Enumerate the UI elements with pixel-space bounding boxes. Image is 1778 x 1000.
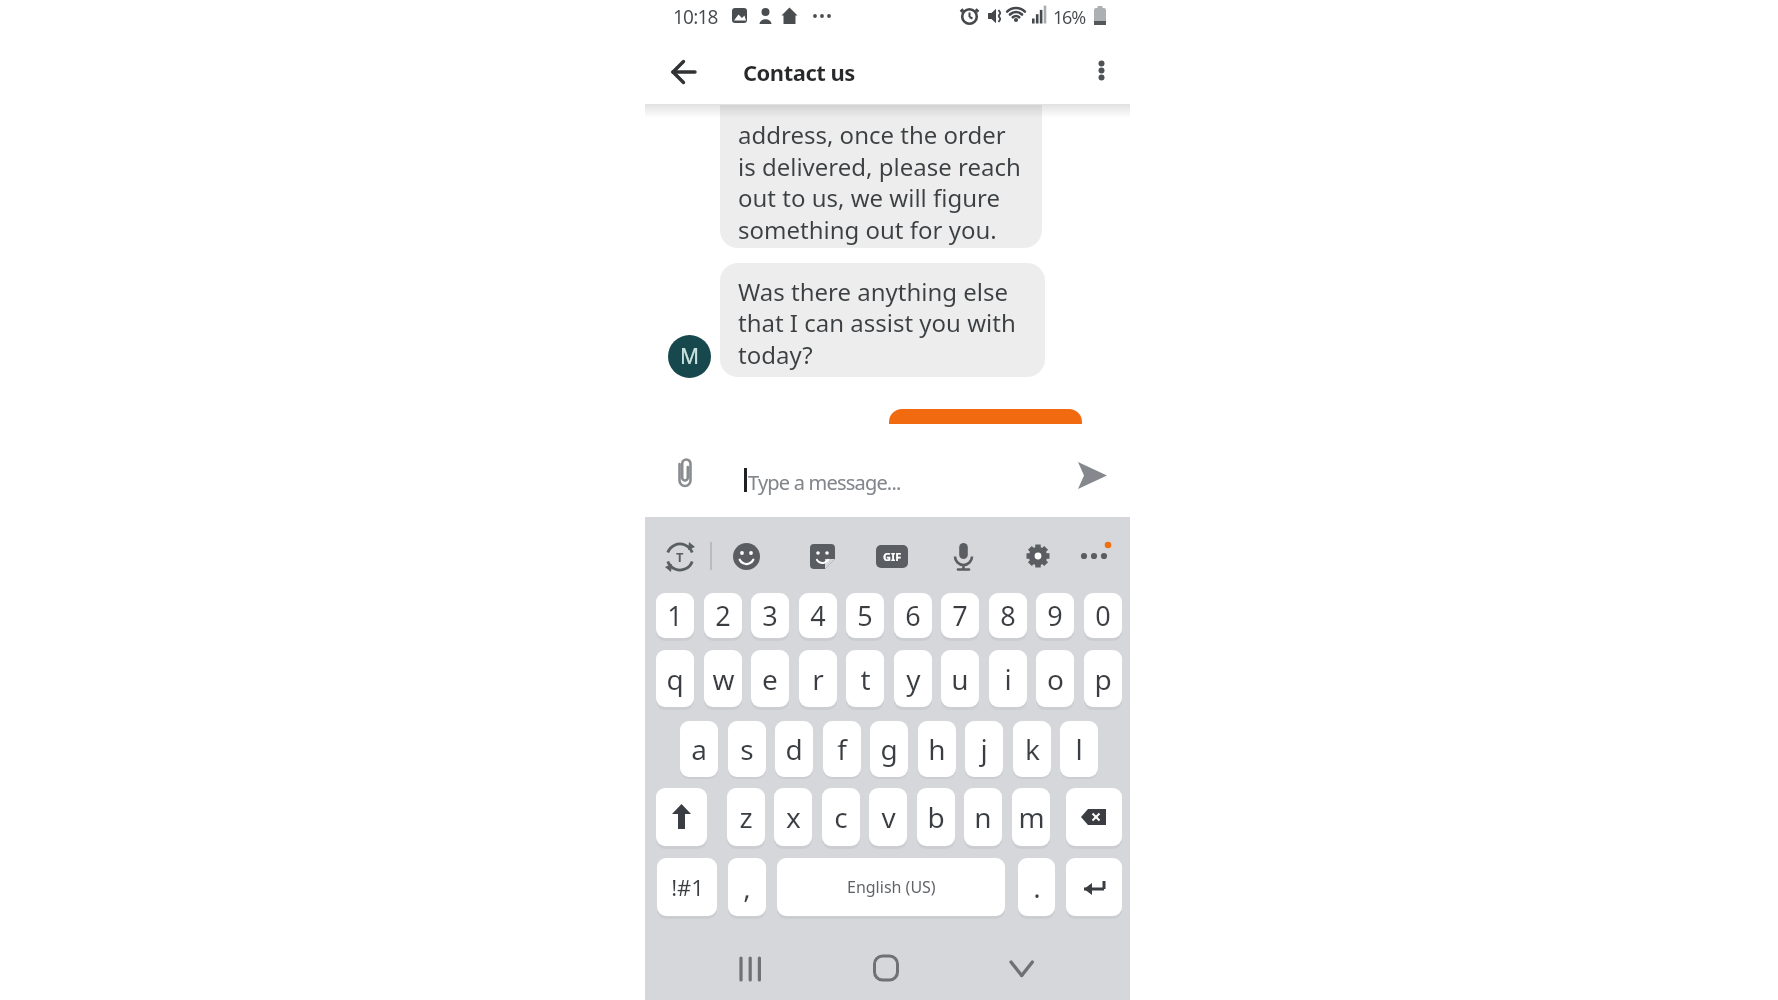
button[interactable]: 5 <box>846 593 884 638</box>
button[interactable]: 9 <box>1036 593 1074 638</box>
button[interactable]: l <box>1060 721 1098 777</box>
staticText: u <box>951 660 969 698</box>
button[interactable]: a <box>680 721 718 777</box>
staticText: g <box>880 730 898 768</box>
button[interactable]: i <box>989 650 1027 707</box>
button[interactable]: s <box>728 721 766 777</box>
button[interactable]: o <box>1036 650 1074 707</box>
staticText: b <box>927 798 945 836</box>
button[interactable]: e <box>751 650 789 707</box>
button[interactable]: m <box>1012 788 1050 846</box>
staticText: s <box>740 730 754 768</box>
button[interactable] <box>666 455 704 495</box>
button[interactable]: 1 <box>656 593 694 638</box>
staticText: 8 <box>1000 597 1016 634</box>
staticText: 6 <box>905 597 921 634</box>
button[interactable]: T <box>663 540 697 574</box>
button[interactable]: . <box>1018 858 1055 916</box>
button[interactable]: English (US) <box>777 858 1005 916</box>
button[interactable] <box>726 946 774 990</box>
staticText: z <box>739 798 753 836</box>
staticText: 2 <box>715 597 731 634</box>
button[interactable] <box>1023 541 1053 571</box>
staticText: that I can assist you with <box>738 306 1016 339</box>
staticText: m <box>1018 798 1045 836</box>
staticText: x <box>786 798 801 836</box>
staticText: 16% <box>1053 5 1085 30</box>
button[interactable]: v <box>869 788 907 846</box>
staticText: , <box>743 868 751 906</box>
button[interactable] <box>1066 788 1122 846</box>
button[interactable]: b <box>917 788 955 846</box>
staticText: Type a message... <box>748 469 901 496</box>
button[interactable]: h <box>918 721 956 777</box>
staticText: English (US) <box>847 876 936 898</box>
button[interactable]: z <box>727 788 765 846</box>
staticText: something out for you. <box>738 213 997 246</box>
button[interactable]: x <box>774 788 812 846</box>
staticText: c <box>834 798 848 836</box>
button[interactable] <box>1070 455 1116 495</box>
button[interactable]: f <box>823 721 861 777</box>
staticText: w <box>712 660 735 698</box>
button[interactable] <box>949 540 978 574</box>
staticText: p <box>1094 660 1112 698</box>
button[interactable]: d <box>775 721 813 777</box>
staticText: is delivered, please reach <box>738 150 1021 183</box>
button[interactable] <box>889 409 1082 424</box>
staticText: 9 <box>1047 597 1063 634</box>
button[interactable]: g <box>870 721 908 777</box>
staticText: h <box>928 730 946 768</box>
staticText: o <box>1047 660 1064 698</box>
staticText: M <box>680 342 700 371</box>
staticText: j <box>980 730 988 768</box>
button[interactable]: y <box>894 650 932 707</box>
staticText: e <box>762 660 778 698</box>
staticText: 1 <box>667 597 683 634</box>
staticText: Contact us <box>743 57 855 87</box>
staticText: t <box>860 660 871 698</box>
button[interactable]: , <box>728 858 766 916</box>
button[interactable]: 2 <box>704 593 742 638</box>
button[interactable]: 4 <box>799 593 837 638</box>
staticText: 3 <box>762 597 778 634</box>
button[interactable] <box>732 542 761 571</box>
button[interactable]: p <box>1084 650 1122 707</box>
staticText: v <box>881 798 896 836</box>
button[interactable]: n <box>964 788 1002 846</box>
staticText: l <box>1075 730 1083 768</box>
button[interactable]: w <box>704 650 742 707</box>
button[interactable] <box>1082 50 1122 94</box>
staticText: T <box>676 548 684 566</box>
staticText: 4 <box>810 597 826 634</box>
button[interactable]: 3 <box>751 593 789 638</box>
button[interactable]: !#1 <box>657 858 717 916</box>
button[interactable]: j <box>965 721 1003 777</box>
button[interactable]: q <box>656 650 694 707</box>
button[interactable]: 8 <box>989 593 1027 638</box>
button[interactable] <box>808 542 837 571</box>
staticText: y <box>906 660 921 698</box>
staticText: 0 <box>1095 597 1111 634</box>
button[interactable]: GIF <box>876 545 908 568</box>
staticText: GIF <box>883 549 902 564</box>
button[interactable] <box>662 50 706 94</box>
button[interactable]: u <box>941 650 979 707</box>
staticText: 5 <box>857 597 873 634</box>
staticText: a <box>691 730 707 768</box>
staticText: d <box>785 730 803 768</box>
button[interactable] <box>1076 540 1116 570</box>
staticText: . <box>1033 868 1041 906</box>
button[interactable]: 0 <box>1084 593 1122 638</box>
button[interactable]: c <box>822 788 860 846</box>
button[interactable]: 7 <box>941 593 979 638</box>
button[interactable] <box>998 946 1046 990</box>
button[interactable] <box>862 946 910 990</box>
button[interactable]: t <box>846 650 884 707</box>
button[interactable]: k <box>1013 721 1051 777</box>
staticText: out to us, we will figure <box>738 181 1001 214</box>
button[interactable] <box>1066 858 1122 916</box>
button[interactable] <box>656 788 707 846</box>
button[interactable]: r <box>799 650 837 707</box>
button[interactable]: 6 <box>894 593 932 638</box>
